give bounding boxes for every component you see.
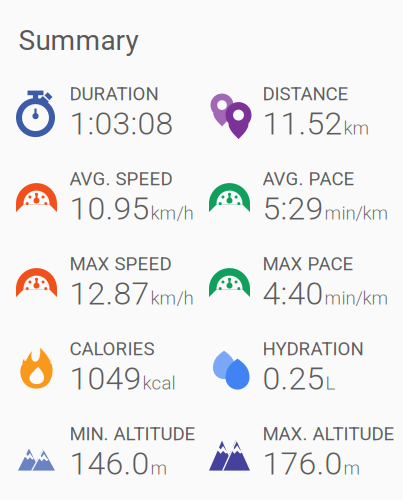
staticText: 4:40 bbox=[262, 275, 323, 312]
staticText: 5:29 bbox=[262, 190, 323, 227]
staticText: km/h bbox=[150, 287, 193, 309]
staticText: min/km bbox=[324, 202, 388, 224]
staticText: 176.0 bbox=[262, 445, 342, 482]
staticText: 0.25 bbox=[262, 360, 324, 397]
button[interactable]: DURATION bbox=[15, 83, 208, 142]
staticText: DISTANCE bbox=[262, 83, 348, 105]
button[interactable]: HYDRATION bbox=[208, 338, 401, 397]
staticText: 1049 bbox=[69, 360, 141, 397]
button[interactable]: DISTANCE bbox=[208, 83, 401, 142]
staticText: km/h bbox=[150, 202, 193, 224]
staticText: 146.0 bbox=[69, 445, 149, 482]
staticText: m bbox=[343, 457, 360, 479]
button[interactable]: MAX. ALTITUDE bbox=[208, 423, 401, 482]
staticText: min/km bbox=[324, 287, 388, 309]
staticText: HYDRATION bbox=[262, 338, 363, 360]
button[interactable]: AVG. SPEED bbox=[15, 168, 208, 227]
staticText: MIN. ALTITUDE bbox=[69, 423, 195, 445]
button[interactable]: MIN. ALTITUDE bbox=[15, 423, 208, 482]
button[interactable]: CALORIES bbox=[15, 338, 208, 397]
staticText: MAX SPEED bbox=[69, 253, 171, 275]
staticText: m bbox=[150, 457, 167, 479]
staticText: km bbox=[343, 117, 369, 139]
staticText: 12.87 bbox=[69, 275, 149, 312]
staticText: MAX. ALTITUDE bbox=[262, 423, 394, 445]
staticText: CALORIES bbox=[69, 338, 154, 360]
staticText: L bbox=[325, 372, 335, 394]
staticText: kcal bbox=[142, 372, 175, 394]
staticText: Summary bbox=[18, 24, 138, 57]
button[interactable]: MAX SPEED bbox=[15, 253, 208, 312]
staticText: 1:03:08 bbox=[69, 105, 173, 142]
staticText: 11.52 bbox=[262, 105, 342, 142]
button[interactable]: MAX PACE bbox=[208, 253, 401, 312]
staticText: DURATION bbox=[69, 83, 158, 105]
staticText: AVG. PACE bbox=[262, 168, 354, 190]
staticText: 10.95 bbox=[69, 190, 149, 227]
button[interactable]: AVG. PACE bbox=[208, 168, 401, 227]
staticText: MAX PACE bbox=[262, 253, 353, 275]
staticText: AVG. SPEED bbox=[69, 168, 172, 190]
